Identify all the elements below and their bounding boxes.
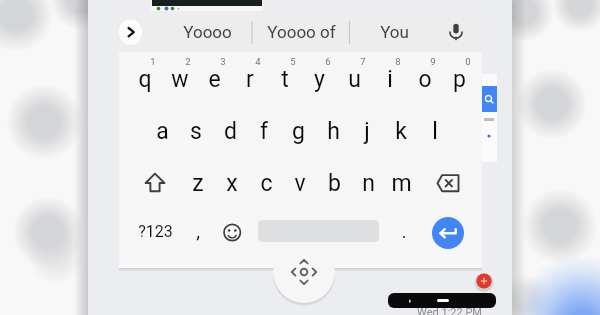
button[interactable]: , xyxy=(183,209,213,253)
staticText: m xyxy=(391,170,412,197)
button[interactable]: e xyxy=(197,57,232,101)
button[interactable]: Backspace xyxy=(427,162,471,206)
staticText: c xyxy=(260,170,273,197)
button[interactable]: z xyxy=(181,161,215,205)
staticText: p xyxy=(453,66,466,93)
button[interactable]: b xyxy=(317,161,351,205)
button[interactable]: l xyxy=(418,109,452,153)
staticText: x xyxy=(226,170,238,197)
button[interactable]: j xyxy=(350,109,384,153)
button[interactable]: Voice input xyxy=(437,14,471,48)
staticText: q xyxy=(138,66,152,93)
button[interactable]: u xyxy=(337,57,372,101)
staticText: l xyxy=(432,118,438,145)
button[interactable]: . xyxy=(389,209,419,253)
button[interactable]: Shift xyxy=(135,162,175,206)
button[interactable]: g xyxy=(281,109,315,153)
button[interactable]: o xyxy=(407,57,442,101)
button[interactable]: Enter xyxy=(430,215,466,251)
staticText: r xyxy=(246,66,254,93)
button[interactable]: You xyxy=(354,16,434,48)
staticText: . xyxy=(401,220,407,242)
button[interactable]: Emoji xyxy=(217,213,251,253)
button[interactable]: w xyxy=(162,57,197,101)
staticText: w xyxy=(171,66,189,93)
staticText: f xyxy=(260,118,268,145)
staticText: 4 xyxy=(255,56,261,67)
button[interactable]: m xyxy=(384,161,418,205)
staticText: Wed 1:22 PM xyxy=(417,306,482,315)
button[interactable]: c xyxy=(249,161,283,205)
staticText: o xyxy=(418,66,432,93)
staticText: 9 xyxy=(430,56,436,67)
button[interactable]: n xyxy=(351,161,385,205)
staticText: a xyxy=(156,118,169,145)
button[interactable]: Yoooo of xyxy=(254,16,349,48)
button[interactable]: k xyxy=(384,109,418,153)
button[interactable]: Move keyboard xyxy=(278,253,330,299)
button[interactable]: Space xyxy=(257,213,378,253)
staticText: 1 xyxy=(150,56,156,67)
staticText: z xyxy=(192,170,204,197)
button[interactable]: t xyxy=(267,57,302,101)
button[interactable]: i xyxy=(372,57,407,101)
button[interactable]: Expand suggestions xyxy=(118,17,148,47)
button[interactable]: x xyxy=(215,161,249,205)
staticText: 8 xyxy=(395,56,401,67)
staticText: y xyxy=(314,66,325,93)
button[interactable]: y xyxy=(302,57,337,101)
staticText: 6 xyxy=(325,56,331,67)
button[interactable]: Yoooo xyxy=(162,16,252,48)
staticText: u xyxy=(348,66,361,93)
button[interactable]: ?123 xyxy=(133,209,177,253)
button[interactable]: s xyxy=(179,109,213,153)
button[interactable]: v xyxy=(283,161,317,205)
staticText: 0 xyxy=(465,56,471,67)
staticText: b xyxy=(328,170,341,197)
staticText: 5 xyxy=(290,56,296,67)
button[interactable]: f xyxy=(247,109,281,153)
staticText: Yoooo xyxy=(183,22,232,42)
staticText: 2 xyxy=(185,56,191,67)
staticText: t xyxy=(281,66,289,93)
button[interactable]: r xyxy=(232,57,267,101)
staticText: k xyxy=(395,118,407,145)
staticText: j xyxy=(364,118,370,145)
button[interactable]: d xyxy=(213,109,247,153)
staticText: ?123 xyxy=(138,222,173,241)
staticText: You xyxy=(380,22,409,42)
staticText: g xyxy=(292,118,305,145)
button[interactable]: h xyxy=(316,109,350,153)
staticText: i xyxy=(387,66,393,93)
staticText: n xyxy=(362,170,375,197)
button[interactable]: p xyxy=(442,57,477,101)
staticText: 7 xyxy=(360,56,366,67)
staticText: d xyxy=(224,118,237,145)
staticText: h xyxy=(327,118,340,145)
button[interactable]: a xyxy=(145,109,179,153)
staticText: s xyxy=(190,118,202,145)
staticText: Yoooo of xyxy=(267,22,336,42)
staticText: 3 xyxy=(220,56,226,67)
staticText: e xyxy=(208,66,221,93)
staticText: , xyxy=(196,220,200,242)
button[interactable]: q xyxy=(127,57,162,101)
staticText: v xyxy=(294,170,306,197)
